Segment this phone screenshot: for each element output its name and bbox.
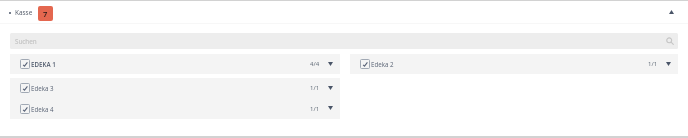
staticText: Kasse [15,8,33,17]
staticText: 4/4 [310,60,320,68]
button[interactable]: Expand [663,59,674,70]
staticText: EDEKA 1 [31,60,56,68]
staticText: 1/1 [648,60,658,68]
staticText: Edeka 3 [31,84,54,92]
button[interactable]: Edeka 3 [10,78,340,98]
button[interactable]: Edeka 2 [350,54,678,74]
staticText: Suchen [15,37,37,46]
button[interactable]: Collapse section [662,4,680,22]
button[interactable]: Expand [325,83,336,94]
staticText: Edeka 4 [31,105,54,113]
button[interactable]: Expand [325,59,336,70]
staticText: Edeka 2 [371,60,394,68]
button[interactable]: Expand [325,103,336,114]
staticText: 1/1 [310,105,320,113]
other: Search [663,34,677,48]
button[interactable]: EDEKA 1 [10,54,340,74]
button[interactable]: Kasse [0,1,688,25]
button[interactable]: Edeka 4 [10,98,340,119]
staticText: 7 [43,9,48,19]
staticText: 1/1 [310,84,320,92]
